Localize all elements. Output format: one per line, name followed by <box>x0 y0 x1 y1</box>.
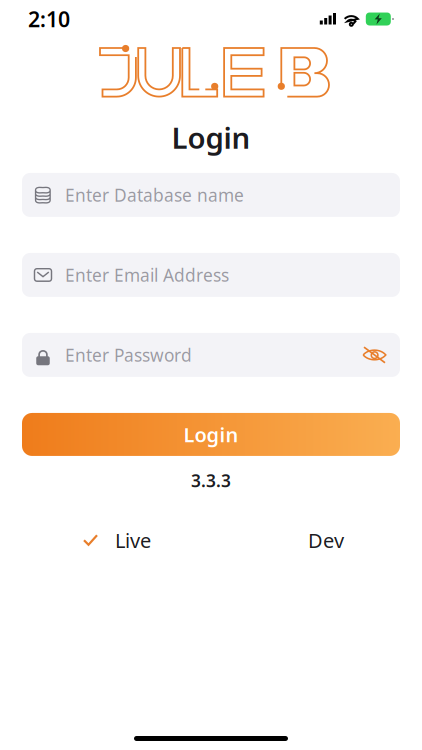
button[interactable]: Login <box>0 413 422 456</box>
button[interactable]: Live <box>83 527 161 554</box>
staticText: Login <box>183 421 238 448</box>
staticText: Enter Database name <box>65 183 244 206</box>
staticText: Enter Password <box>65 343 192 366</box>
button[interactable]: Dev <box>298 527 354 554</box>
staticText: Dev <box>308 527 344 554</box>
button[interactable]: Show password <box>362 345 387 364</box>
staticText: 2:10 <box>28 5 70 33</box>
staticText: Live <box>115 527 151 554</box>
staticText: Login <box>171 118 250 157</box>
staticText: 3.3.3 <box>191 469 231 492</box>
staticText: Enter Email Address <box>65 263 229 286</box>
